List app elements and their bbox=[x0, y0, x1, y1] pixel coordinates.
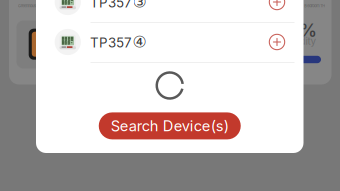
button[interactable]: TP357 bbox=[36, 22, 303, 62]
staticText: Search Device(s) bbox=[111, 117, 229, 135]
staticText: ③ bbox=[133, 0, 147, 11]
staticText: Humidity bbox=[275, 35, 316, 47]
button[interactable]: TP357 bbox=[36, 0, 303, 22]
staticText: TP357 bbox=[90, 0, 132, 11]
staticText: Bedroom TH bbox=[304, 4, 325, 8]
staticText: Greenhouse Sensor bbox=[18, 4, 50, 8]
button[interactable]: Search Device(s) bbox=[99, 112, 241, 139]
staticText: TP357 bbox=[90, 35, 132, 51]
staticText: 58% bbox=[277, 20, 316, 41]
staticText: ④ bbox=[133, 33, 147, 51]
